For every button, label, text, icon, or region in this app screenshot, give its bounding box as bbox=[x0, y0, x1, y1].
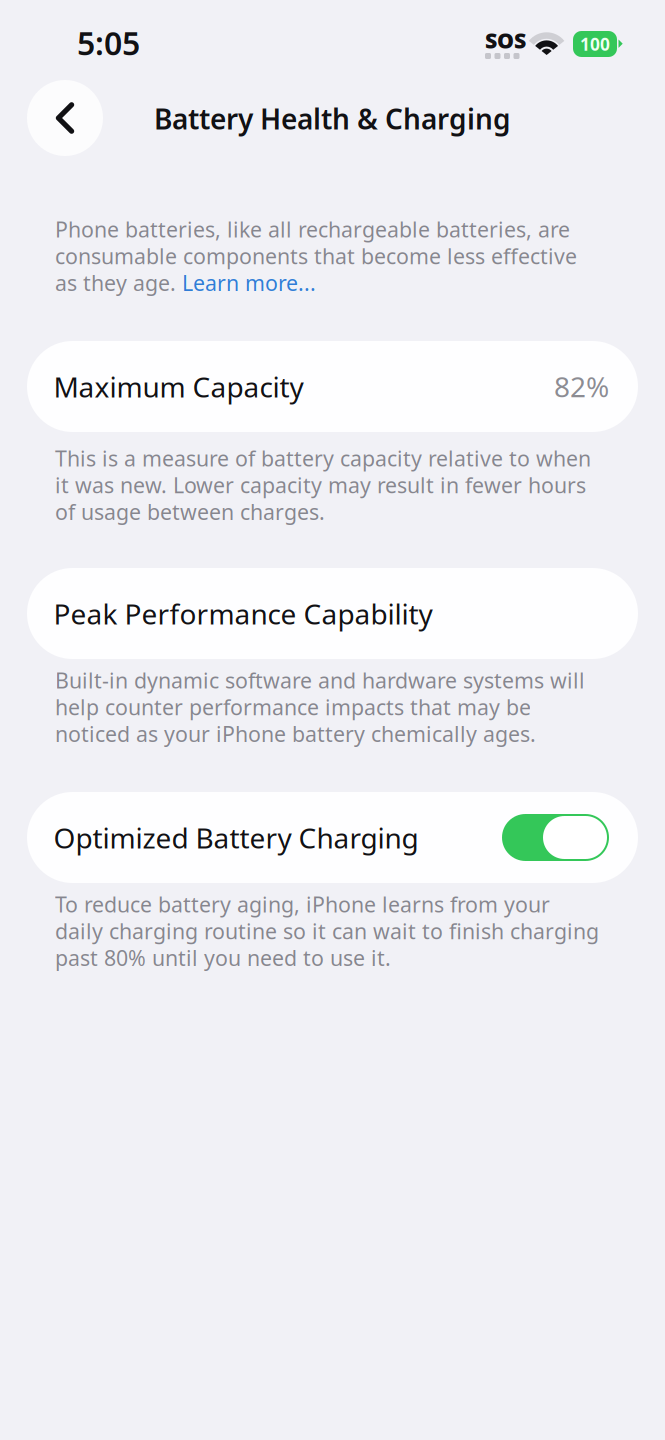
button[interactable]: Maximum Capacity bbox=[27, 341, 638, 432]
staticText: Built-in dynamic software and hardware s… bbox=[55, 666, 585, 748]
button[interactable]: Peak Performance Capability bbox=[27, 568, 638, 659]
staticText: SOS bbox=[485, 26, 526, 54]
staticText: 5:05 bbox=[77, 21, 140, 64]
staticText: Maximum Capacity bbox=[53, 368, 303, 405]
staticText: Phone batteries, like all rechargeable b… bbox=[55, 215, 577, 297]
staticText: This is a measure of battery capacity re… bbox=[55, 444, 591, 526]
staticText: To reduce battery aging, iPhone learns f… bbox=[55, 890, 599, 972]
staticText: 100 bbox=[580, 32, 610, 55]
staticText: Optimized Battery Charging bbox=[53, 819, 418, 856]
staticText: 82% bbox=[554, 368, 609, 405]
staticText: Battery Health & Charging bbox=[154, 100, 511, 137]
staticText: Peak Performance Capability bbox=[53, 595, 432, 632]
button[interactable]: Optimized Battery Charging bbox=[27, 792, 638, 883]
button[interactable]: Back bbox=[27, 80, 103, 156]
